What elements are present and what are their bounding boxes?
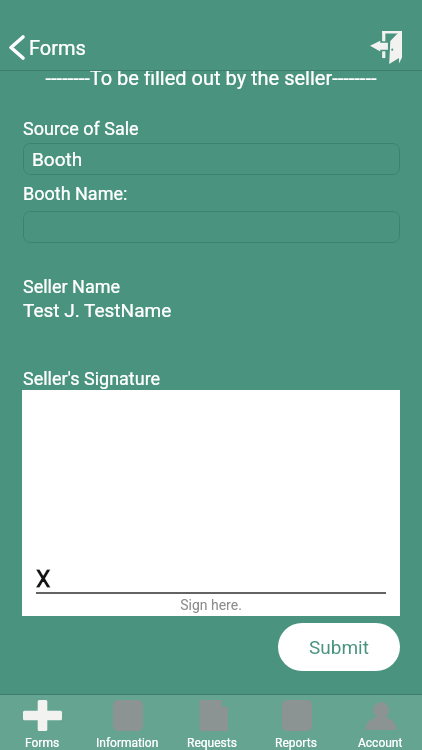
button[interactable]: Forms [0, 30, 94, 65]
staticText: Source of Sale [23, 118, 139, 139]
button[interactable] [23, 211, 400, 243]
staticText: --------To be filled out by the seller--… [0, 66, 422, 89]
button[interactable]: Account [338, 695, 422, 750]
staticText: Seller's Signature [23, 368, 161, 389]
staticText: Reports [275, 736, 317, 750]
staticText: X [36, 566, 51, 593]
button[interactable]: Forms [0, 695, 85, 750]
button[interactable]: Requests [170, 695, 254, 750]
staticText: Forms [25, 736, 60, 750]
staticText: Information [96, 736, 159, 750]
staticText: Sign here. [22, 597, 400, 613]
button[interactable]: Booth [23, 143, 400, 175]
staticText: Account [358, 736, 403, 750]
button[interactable]: X [22, 390, 400, 616]
button[interactable]: Reports [254, 695, 338, 750]
staticText: Requests [187, 736, 237, 750]
staticText: Forms [29, 36, 86, 59]
staticText: Submit [309, 636, 369, 658]
staticText: Seller Name [23, 276, 121, 297]
button[interactable]: Submit [278, 623, 400, 671]
staticText: Booth [32, 148, 83, 170]
button[interactable]: Log out [360, 24, 422, 71]
staticText: Booth Name: [23, 183, 128, 204]
button[interactable]: Information [85, 695, 170, 750]
staticText: Test J. TestName [23, 299, 172, 321]
